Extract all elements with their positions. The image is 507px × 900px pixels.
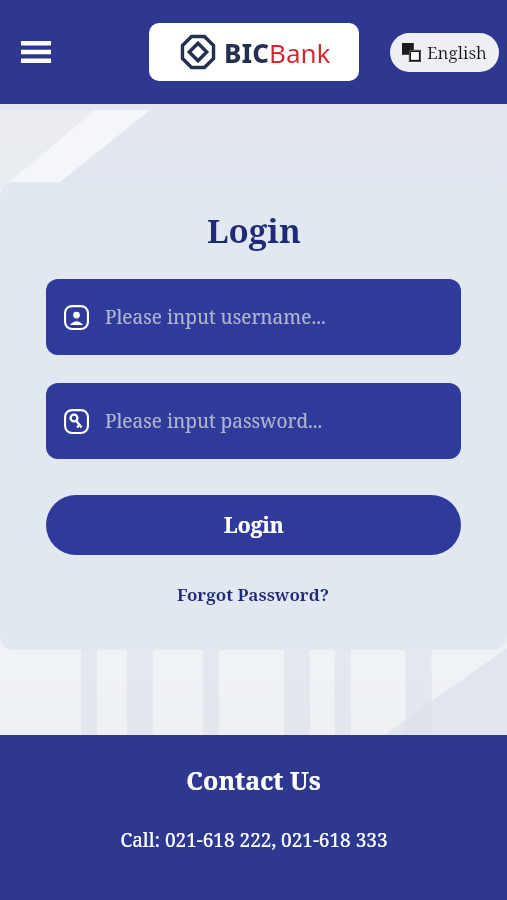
button[interactable]: Please input username...: [46, 279, 461, 355]
staticText: English: [427, 41, 487, 64]
button[interactable]: English: [402, 41, 487, 64]
staticText: Login: [207, 208, 301, 253]
staticText: Forgot Password?: [177, 583, 330, 606]
button[interactable]: Forgot Password?: [171, 577, 336, 612]
button[interactable]: Call: 021-618 222, 021-618 333: [116, 823, 392, 857]
staticText: Bank: [269, 35, 331, 70]
staticText: Contact Us: [186, 763, 321, 797]
staticText: BIC: [224, 35, 269, 70]
staticText: Call: 021-618 222, 021-618 333: [120, 827, 388, 853]
staticText: Please input username...: [105, 304, 326, 330]
staticText: Please input password...: [105, 408, 323, 434]
button[interactable]: Please input password...: [46, 383, 461, 459]
button[interactable]: Login: [46, 495, 461, 555]
button[interactable]: BIC: [149, 23, 359, 81]
button[interactable]: Menu: [14, 30, 58, 74]
staticText: Login: [224, 511, 284, 540]
